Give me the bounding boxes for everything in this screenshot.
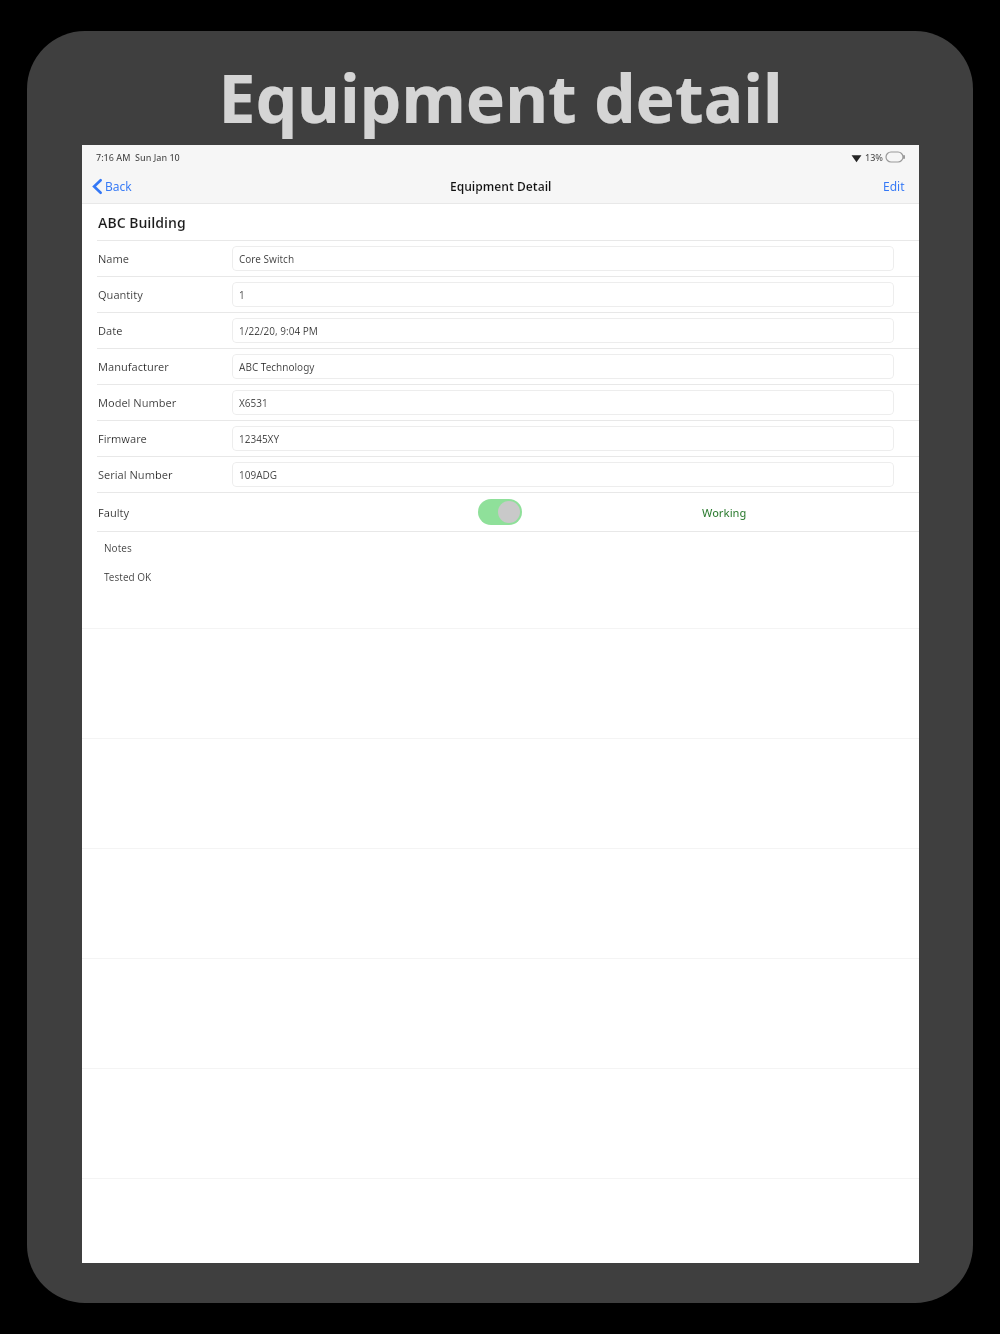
- staticText: ABC Building: [98, 213, 186, 232]
- staticText: 109ADG: [239, 468, 278, 482]
- staticText: 7:16 AM Sun Jan 10: [96, 151, 180, 163]
- staticText: Name: [98, 251, 232, 266]
- button[interactable]: Edit: [869, 171, 919, 201]
- staticText: 1/22/20, 9:04 PM: [239, 324, 318, 338]
- button[interactable]: Date: [82, 313, 919, 348]
- button[interactable]: Quantity: [82, 277, 919, 312]
- button[interactable]: Serial Number: [82, 457, 919, 492]
- staticText: Date: [98, 323, 232, 338]
- staticText: Serial Number: [98, 467, 232, 482]
- staticText: Core Switch: [239, 252, 295, 266]
- staticText: Notes: [104, 541, 132, 555]
- staticText: 12345XY: [239, 432, 280, 446]
- staticText: Tested OK: [104, 570, 152, 584]
- staticText: 13%: [865, 151, 883, 163]
- staticText: X6531: [239, 396, 268, 410]
- staticText: 1: [239, 288, 245, 302]
- staticText: Back: [105, 178, 132, 194]
- staticText: Quantity: [98, 287, 232, 302]
- staticText: ABC Technology: [239, 360, 315, 374]
- button[interactable]: Faulty: [82, 493, 919, 531]
- staticText: Model Number: [98, 395, 232, 410]
- staticText: Faulty: [98, 505, 130, 520]
- button[interactable]: Model Number: [82, 385, 919, 420]
- staticText: Edit: [883, 178, 905, 194]
- button[interactable]: Faulty toggle: [478, 499, 522, 525]
- staticText: Manufacturer: [98, 359, 232, 374]
- button[interactable]: Manufacturer: [82, 349, 919, 384]
- staticText: Equipment detail: [218, 52, 783, 142]
- staticText: Equipment Detail: [450, 178, 552, 194]
- button[interactable]: Back: [82, 172, 144, 200]
- button[interactable]: Name: [82, 241, 919, 276]
- button[interactable]: Firmware: [82, 421, 919, 456]
- staticText: Firmware: [98, 431, 232, 446]
- staticText: Working: [702, 505, 747, 520]
